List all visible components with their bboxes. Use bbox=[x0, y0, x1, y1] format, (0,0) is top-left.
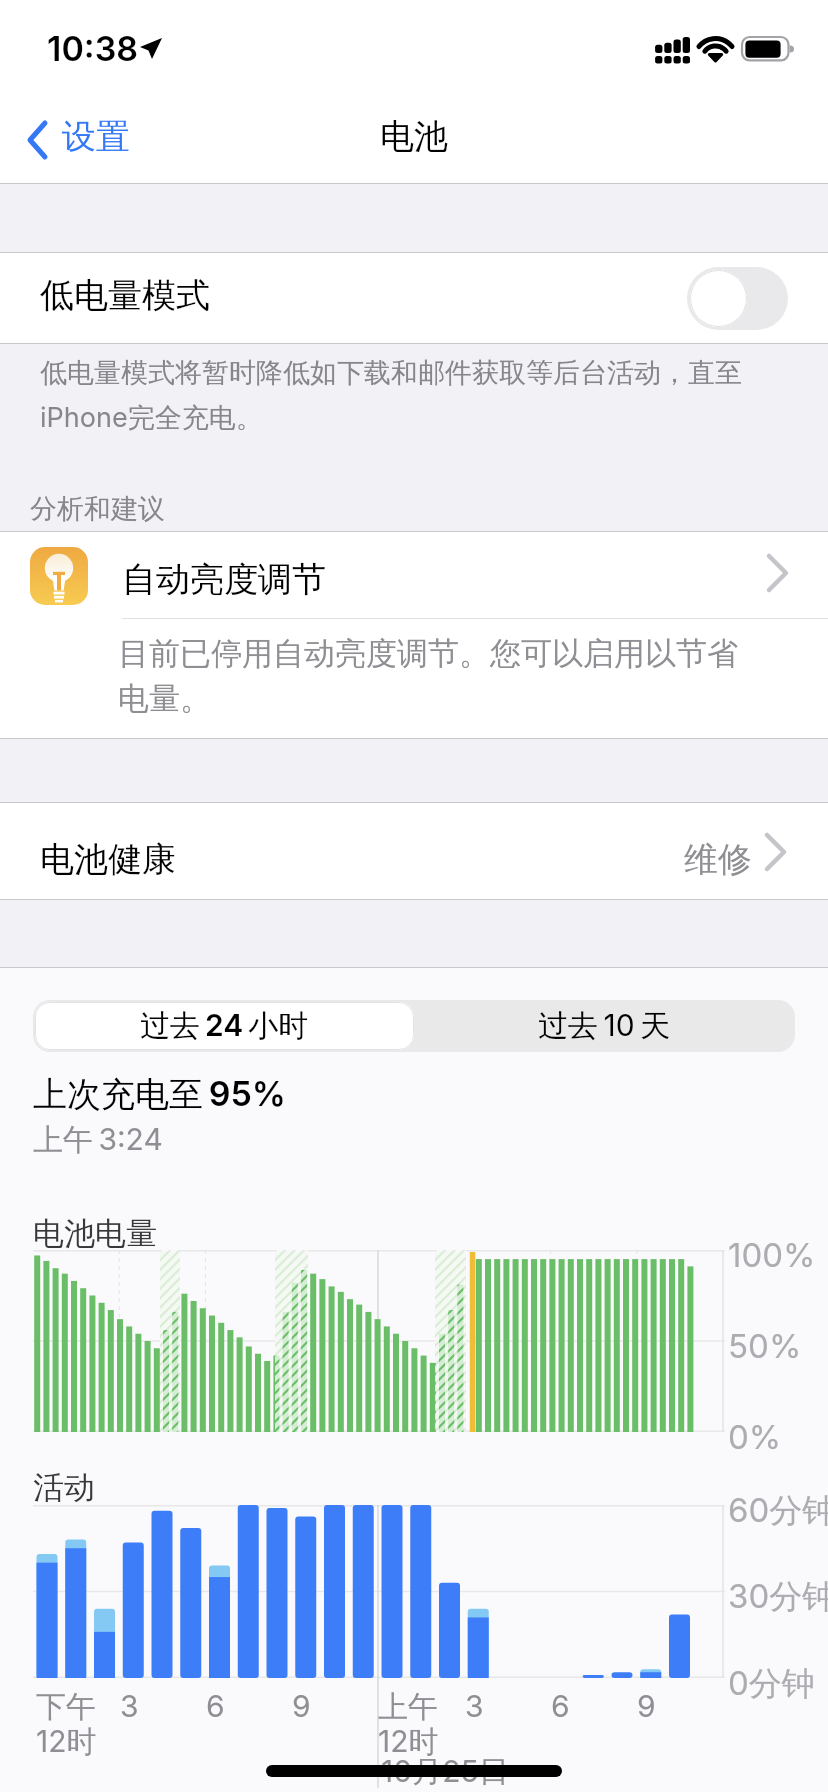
staticText: 设置 bbox=[62, 115, 130, 158]
staticText: 目前已停用自动亮度调节。您可以启用以节省 电量。 bbox=[118, 634, 738, 719]
staticText: 60分钟 bbox=[728, 1490, 828, 1532]
staticText: 3 bbox=[120, 1688, 139, 1724]
staticText: 9 bbox=[292, 1688, 311, 1724]
button[interactable] bbox=[687, 267, 788, 330]
button[interactable]: 过去 10 天 bbox=[414, 1000, 795, 1052]
staticText: 电池电量 bbox=[33, 1214, 157, 1253]
staticText: 上午 3:24 bbox=[33, 1121, 163, 1159]
staticText: 自动亮度调节 bbox=[122, 558, 326, 601]
staticText: 10:38 bbox=[47, 28, 139, 69]
staticText: 6 bbox=[551, 1688, 570, 1724]
staticText: 分析和建议 bbox=[30, 492, 165, 526]
button[interactable] bbox=[0, 252, 828, 344]
staticText: 电池 bbox=[380, 115, 448, 158]
button[interactable]: 自动亮度调节 bbox=[0, 531, 828, 619]
staticText: 10月25日 bbox=[381, 1753, 509, 1791]
staticText: 6 bbox=[206, 1688, 225, 1724]
staticText: 30分钟 bbox=[728, 1576, 828, 1618]
button[interactable]: 设置 bbox=[20, 112, 150, 172]
staticText: 3 bbox=[465, 1688, 484, 1724]
staticText: 100% bbox=[728, 1235, 816, 1275]
staticText: 50% bbox=[728, 1326, 802, 1366]
staticText: 电池健康 bbox=[40, 838, 176, 881]
staticText: 下午 12时 bbox=[36, 1688, 97, 1761]
button[interactable] bbox=[0, 802, 828, 900]
staticText: 低电量模式 bbox=[40, 274, 210, 317]
staticText: 维修 bbox=[684, 838, 752, 881]
staticText: 0% bbox=[728, 1417, 782, 1457]
staticText: 上次充电至 95% bbox=[33, 1073, 286, 1116]
staticText: 低电量模式将暂时降低如下载和邮件获取等后台活动，直至 iPhone完全充电。 bbox=[40, 356, 742, 435]
staticText: 9 bbox=[637, 1688, 656, 1724]
staticText: 0分钟 bbox=[728, 1663, 815, 1705]
button[interactable]: 过去 24 小时 bbox=[35, 1002, 414, 1050]
staticText: 过去 10 天 bbox=[538, 1007, 671, 1045]
staticText: 活动 bbox=[33, 1468, 95, 1507]
staticText: 过去 24 小时 bbox=[140, 1007, 309, 1045]
staticText: 上午 12时 bbox=[378, 1688, 439, 1761]
